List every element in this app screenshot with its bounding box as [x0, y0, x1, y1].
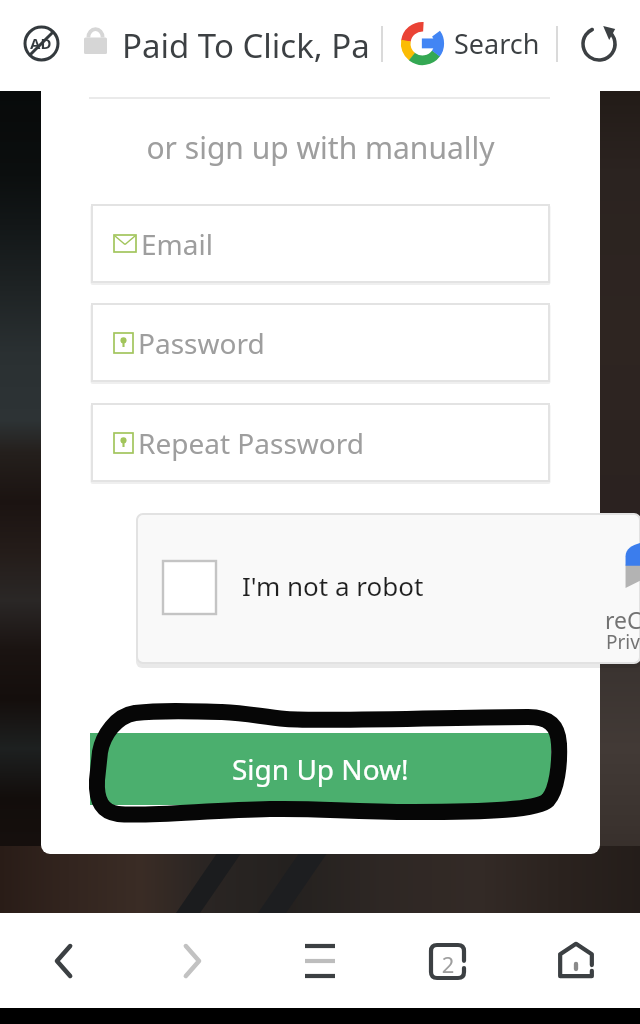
button[interactable]: Ad block — [17, 19, 65, 67]
staticText: Repeat Password — [138, 424, 364, 462]
staticText: Privacy - Terms — [606, 629, 640, 655]
staticText: Password — [138, 324, 265, 362]
staticText: Email — [141, 225, 213, 263]
button[interactable]: Email — [92, 205, 549, 282]
staticText: reCAPTCHA — [605, 604, 640, 635]
staticText: 2 — [440, 949, 456, 979]
button[interactable]: Paid To Click, Pa — [122, 23, 370, 68]
button[interactable]: Sign Up Now! — [90, 733, 551, 805]
button[interactable]: Forward — [128, 913, 256, 1008]
button[interactable]: Home — [512, 913, 640, 1008]
button[interactable]: Tabs — [384, 913, 512, 1008]
button[interactable]: Password — [92, 304, 549, 381]
staticText: AD — [30, 33, 52, 53]
button[interactable]: Repeat Password — [92, 404, 549, 481]
staticText: Sign Up Now! — [232, 750, 409, 788]
button[interactable] — [137, 514, 640, 663]
button[interactable]: Menu — [256, 913, 384, 1008]
staticText: I'm not a robot — [242, 568, 424, 603]
staticText: or sign up with manually — [41, 127, 600, 168]
button[interactable]: Back — [0, 913, 128, 1008]
button[interactable]: Reload — [574, 19, 624, 69]
button[interactable]: Search — [454, 25, 540, 62]
